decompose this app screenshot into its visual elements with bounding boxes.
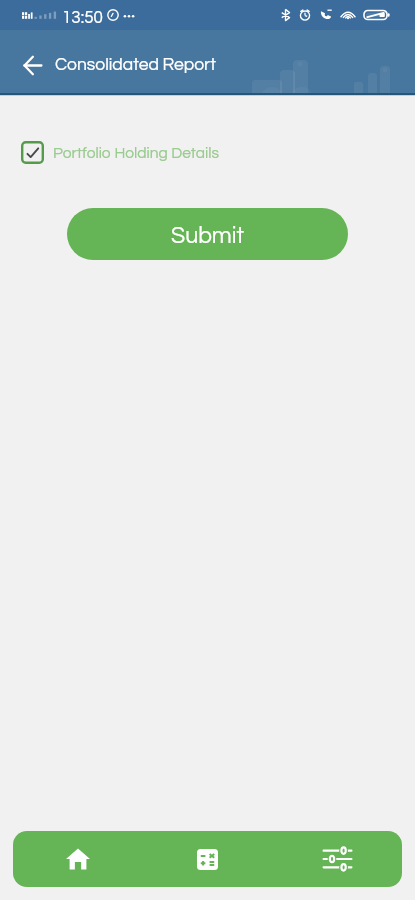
button[interactable]: Settings <box>272 831 402 887</box>
button[interactable]: Submit <box>67 208 348 260</box>
staticText: Submit <box>171 224 245 248</box>
button[interactable]: Calculator <box>142 831 272 887</box>
staticText: Consolidated Report <box>55 56 216 74</box>
staticText: Portfolio Holding Details <box>53 145 219 161</box>
button[interactable]: Portfolio Holding Details <box>21 141 415 164</box>
button[interactable]: Home <box>13 831 142 887</box>
button[interactable]: Back <box>17 50 47 80</box>
staticText: 13:50 <box>62 9 103 27</box>
